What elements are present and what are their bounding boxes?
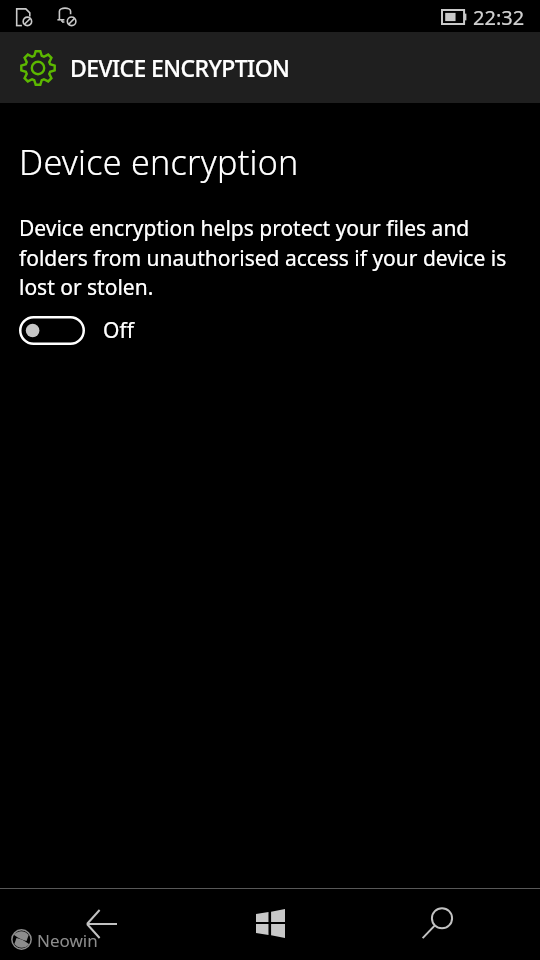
staticText: DEVICE ENCRYPTION — [70, 52, 290, 83]
button[interactable]: Back — [0, 889, 180, 960]
staticText: 22:32 — [473, 4, 525, 31]
staticText: Off — [103, 316, 134, 345]
staticText: Device encryption — [19, 139, 299, 185]
button[interactable]: Off — [19, 316, 134, 345]
button[interactable]: DEVICE ENCRYPTION — [0, 32, 540, 103]
button[interactable]: Search — [360, 889, 540, 960]
staticText: Neowin — [37, 929, 98, 952]
button[interactable]: Start — [180, 889, 360, 960]
staticText: Device encryption helps protect your fil… — [19, 214, 521, 301]
